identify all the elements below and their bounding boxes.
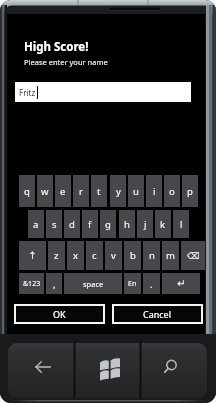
button[interactable]: w bbox=[37, 175, 53, 207]
staticText: Fritz bbox=[19, 87, 36, 98]
staticText: . bbox=[150, 278, 153, 290]
staticText: g bbox=[105, 218, 111, 231]
staticText: n bbox=[149, 249, 155, 262]
staticText: q bbox=[24, 185, 30, 198]
staticText: En bbox=[128, 279, 137, 289]
staticText: s bbox=[52, 218, 57, 231]
staticText: h bbox=[124, 218, 130, 231]
staticText: m bbox=[166, 249, 175, 262]
staticText: f bbox=[88, 218, 92, 231]
button[interactable]: x bbox=[67, 241, 84, 270]
button[interactable]: Fritz bbox=[15, 82, 191, 102]
button[interactable]: t bbox=[91, 175, 107, 207]
button[interactable]: a bbox=[28, 210, 44, 238]
staticText: &123 bbox=[23, 279, 41, 289]
staticText: r bbox=[79, 185, 83, 198]
button[interactable]: c bbox=[86, 241, 103, 270]
button[interactable]: ⌫ bbox=[181, 241, 205, 270]
button[interactable]: OK bbox=[14, 304, 105, 324]
button[interactable]: o bbox=[164, 175, 180, 207]
button[interactable]: j bbox=[137, 210, 153, 238]
button[interactable] bbox=[142, 341, 207, 398]
button[interactable]: m bbox=[162, 241, 179, 270]
staticText: t bbox=[97, 185, 101, 198]
button[interactable]: En bbox=[124, 273, 141, 294]
staticText: b bbox=[130, 249, 136, 262]
button[interactable]: b bbox=[124, 241, 141, 270]
staticText: a bbox=[33, 218, 39, 231]
button[interactable]: ↑ bbox=[19, 241, 46, 270]
staticText: z bbox=[54, 249, 59, 262]
staticText: ↑ bbox=[28, 250, 37, 262]
button[interactable]: e bbox=[55, 175, 71, 207]
button[interactable]: z bbox=[48, 241, 65, 270]
staticText: i bbox=[153, 185, 156, 198]
staticText: space bbox=[83, 279, 104, 289]
button[interactable]: s bbox=[46, 210, 62, 238]
staticText: , bbox=[53, 278, 56, 290]
staticText: OK bbox=[53, 308, 66, 320]
button[interactable]: k bbox=[155, 210, 171, 238]
button[interactable] bbox=[8, 341, 74, 398]
staticText: d bbox=[69, 218, 75, 231]
staticText: e bbox=[60, 185, 66, 198]
staticText: Please enter your name bbox=[24, 57, 108, 67]
button[interactable]: Cancel bbox=[112, 304, 203, 324]
staticText: Cancel bbox=[143, 308, 172, 320]
button[interactable]: f bbox=[82, 210, 98, 238]
button[interactable]: u bbox=[128, 175, 144, 207]
staticText: l bbox=[180, 218, 183, 231]
staticText: y bbox=[116, 185, 121, 198]
button[interactable]: &123 bbox=[19, 273, 44, 294]
staticText: v bbox=[111, 249, 116, 262]
button[interactable]: v bbox=[105, 241, 122, 270]
button[interactable]: q bbox=[19, 175, 35, 207]
staticText: j bbox=[144, 218, 147, 231]
button[interactable]: i bbox=[146, 175, 162, 207]
button[interactable]: h bbox=[119, 210, 135, 238]
staticText: High Score! bbox=[24, 39, 89, 55]
button[interactable]: , bbox=[46, 273, 62, 294]
button[interactable]: r bbox=[73, 175, 89, 207]
staticText: u bbox=[133, 185, 139, 198]
staticText: c bbox=[92, 249, 97, 262]
staticText: x bbox=[73, 249, 79, 262]
button[interactable]: g bbox=[100, 210, 116, 238]
button[interactable]: ↵ bbox=[162, 273, 200, 294]
button[interactable]: n bbox=[143, 241, 160, 270]
button[interactable]: . bbox=[143, 273, 160, 294]
button[interactable] bbox=[76, 341, 140, 398]
staticText: o bbox=[169, 185, 175, 198]
button[interactable]: space bbox=[64, 273, 122, 294]
button[interactable]: y bbox=[110, 175, 126, 207]
staticText: ↵ bbox=[177, 278, 186, 290]
button[interactable]: d bbox=[64, 210, 80, 238]
button[interactable]: l bbox=[173, 210, 189, 238]
staticText: ⌫ bbox=[187, 251, 200, 261]
staticText: k bbox=[160, 218, 166, 231]
button[interactable]: p bbox=[182, 175, 198, 207]
staticText: p bbox=[187, 185, 193, 198]
staticText: w bbox=[41, 185, 49, 198]
